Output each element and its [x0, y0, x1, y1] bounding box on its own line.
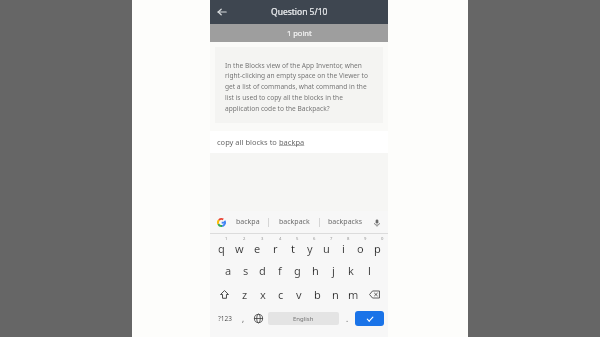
staticText: English — [293, 315, 314, 323]
staticText: 6 — [313, 236, 316, 242]
staticText: h — [312, 263, 319, 278]
staticText: c — [278, 287, 284, 302]
staticText: q — [218, 241, 225, 256]
button[interactable]: x — [254, 284, 272, 305]
button[interactable]: 4 — [266, 236, 284, 257]
staticText: e — [254, 241, 261, 256]
button[interactable]: Back — [213, 3, 231, 21]
button[interactable]: Submit — [355, 311, 384, 326]
button[interactable]: d — [254, 260, 271, 281]
staticText: backpa — [236, 217, 260, 227]
staticText: v — [296, 287, 302, 302]
button[interactable]: Shift — [212, 284, 236, 305]
button[interactable]: 6 — [301, 236, 318, 257]
button[interactable]: a — [220, 260, 237, 281]
staticText: , — [242, 313, 245, 324]
button[interactable]: backpack — [269, 211, 319, 233]
button[interactable]: Comma — [237, 307, 250, 329]
button[interactable]: c — [272, 284, 290, 305]
button[interactable]: 3 — [248, 236, 266, 257]
staticText: backpacks — [328, 217, 363, 227]
staticText: m — [348, 287, 359, 302]
staticText: 5 — [296, 236, 299, 242]
staticText: . — [346, 313, 349, 324]
button[interactable]: j — [324, 260, 342, 281]
staticText: n — [332, 287, 339, 302]
staticText: g — [294, 263, 301, 278]
button[interactable]: m — [344, 284, 362, 305]
button[interactable]: ?123 — [213, 307, 237, 329]
staticText: x — [260, 287, 266, 302]
button[interactable]: s — [237, 260, 254, 281]
button[interactable]: 1 — [212, 236, 230, 257]
staticText: 2 — [243, 236, 246, 242]
staticText: w — [235, 241, 244, 256]
staticText: 8 — [347, 236, 350, 242]
staticText: k — [348, 263, 354, 278]
staticText: 9 — [364, 236, 367, 242]
staticText: backpack — [279, 217, 310, 227]
button[interactable]: v — [290, 284, 308, 305]
button[interactable]: 9 — [352, 236, 369, 257]
staticText: d — [259, 263, 266, 278]
button[interactable]: 2 — [230, 236, 248, 257]
staticText: l — [368, 263, 371, 278]
staticText: a — [225, 263, 232, 278]
staticText: backpa — [279, 137, 305, 147]
button[interactable]: h — [306, 260, 324, 281]
button[interactable]: Change language — [250, 307, 266, 329]
button[interactable]: Backspace — [362, 284, 386, 305]
staticText: 3 — [261, 236, 264, 242]
button[interactable]: Period — [341, 307, 354, 329]
button[interactable]: k — [342, 260, 360, 281]
staticText: In the Blocks view of the App Inventor, … — [225, 61, 375, 113]
button[interactable]: 8 — [335, 236, 352, 257]
staticText: t — [291, 241, 295, 256]
button[interactable]: b — [308, 284, 326, 305]
button[interactable]: g — [288, 260, 306, 281]
staticText: p — [374, 241, 381, 256]
staticText: r — [273, 241, 278, 256]
button[interactable]: 7 — [318, 236, 335, 257]
button[interactable]: 5 — [284, 236, 301, 257]
button[interactable]: l — [360, 260, 378, 281]
staticText: z — [242, 287, 248, 302]
staticText: j — [332, 263, 335, 278]
staticText: o — [357, 241, 364, 256]
staticText: b — [314, 287, 321, 302]
staticText: 4 — [279, 236, 282, 242]
staticText: 7 — [330, 236, 333, 242]
button[interactable]: z — [236, 284, 254, 305]
staticText: 1 — [225, 236, 228, 242]
button[interactable]: n — [326, 284, 344, 305]
staticText: Question 5/10 — [271, 6, 328, 18]
staticText: 1 point — [287, 28, 312, 38]
button[interactable]: Google — [215, 216, 228, 229]
button[interactable]: copy all blocks to — [210, 131, 388, 153]
staticText: copy all blocks to — [217, 137, 279, 147]
staticText: s — [243, 263, 249, 278]
button[interactable]: 0 — [369, 236, 386, 257]
staticText: f — [278, 263, 282, 278]
button[interactable]: backpacks — [320, 211, 370, 233]
staticText: 0 — [381, 236, 384, 242]
button[interactable]: English — [268, 312, 339, 325]
staticText: y — [307, 241, 313, 256]
staticText: ?123 — [218, 314, 232, 323]
staticText: i — [342, 241, 345, 256]
button[interactable]: Voice input — [370, 216, 383, 229]
staticText: u — [323, 241, 330, 256]
button[interactable]: backpa — [228, 211, 268, 233]
button[interactable]: f — [271, 260, 288, 281]
